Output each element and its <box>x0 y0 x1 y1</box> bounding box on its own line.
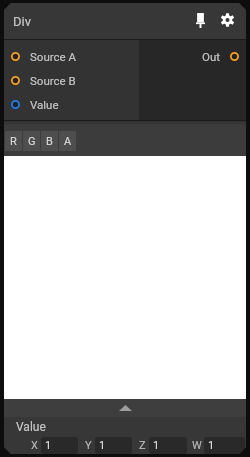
staticText: R <box>10 135 17 148</box>
staticText: Source B <box>30 74 76 87</box>
staticText: Source A <box>30 50 76 63</box>
button[interactable]: G <box>23 131 40 151</box>
staticText: 1 <box>208 439 215 452</box>
staticText: Div <box>13 14 31 29</box>
button[interactable]: A <box>59 131 76 151</box>
button[interactable]: B <box>41 131 58 151</box>
staticText: Value <box>16 420 46 434</box>
button[interactable]: Settings <box>215 5 239 35</box>
staticText: G <box>28 135 36 148</box>
staticText: Out <box>202 50 221 63</box>
button[interactable]: Y <box>81 437 135 454</box>
staticText: W <box>192 439 202 452</box>
button[interactable]: X <box>27 437 81 454</box>
button[interactable]: Collapse <box>4 399 246 417</box>
staticText: A <box>64 135 72 148</box>
staticText: X <box>31 439 38 452</box>
button[interactable]: Source A <box>4 44 139 68</box>
button[interactable]: Source B <box>4 68 139 92</box>
staticText: Value <box>30 98 59 111</box>
staticText: 1 <box>153 439 160 452</box>
staticText: Z <box>139 439 146 452</box>
staticText: 1 <box>45 439 52 452</box>
staticText: Y <box>85 439 92 452</box>
button[interactable]: Out <box>139 44 246 68</box>
button[interactable]: W <box>190 437 245 454</box>
button[interactable]: Pin <box>188 5 212 35</box>
staticText: 1 <box>99 439 106 452</box>
button[interactable]: Value <box>4 92 139 116</box>
button[interactable]: R <box>5 131 22 151</box>
button[interactable]: Z <box>135 437 190 454</box>
staticText: B <box>46 135 53 148</box>
